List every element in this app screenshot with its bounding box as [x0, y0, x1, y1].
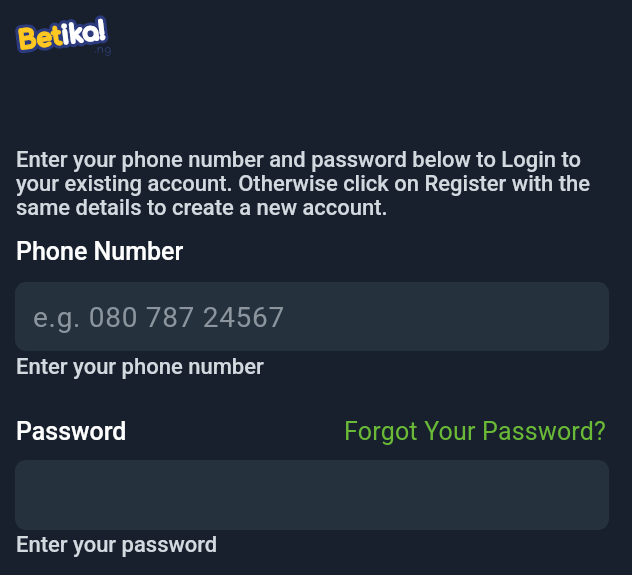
- staticText: Phone Number: [16, 237, 184, 266]
- staticText: Enter your password: [16, 532, 218, 558]
- staticText: Forgot Your Password?: [344, 417, 607, 446]
- staticText: Betika!: [17, 17, 108, 55]
- staticText: Enter your phone number and password bel…: [16, 148, 616, 220]
- staticText: Password: [16, 417, 127, 446]
- staticText: Betika!: [17, 17, 108, 55]
- button[interactable]: Betika.ng home: [14, 10, 130, 66]
- staticText: Enter your phone number: [16, 354, 264, 380]
- button[interactable]: Phone number input field: [15, 282, 609, 351]
- staticText: Betika!: [17, 17, 108, 55]
- button[interactable]: Forgot Your Password?: [344, 417, 607, 446]
- staticText: e.g. 080 787 24567: [33, 301, 285, 334]
- staticText: .ng: [94, 43, 112, 55]
